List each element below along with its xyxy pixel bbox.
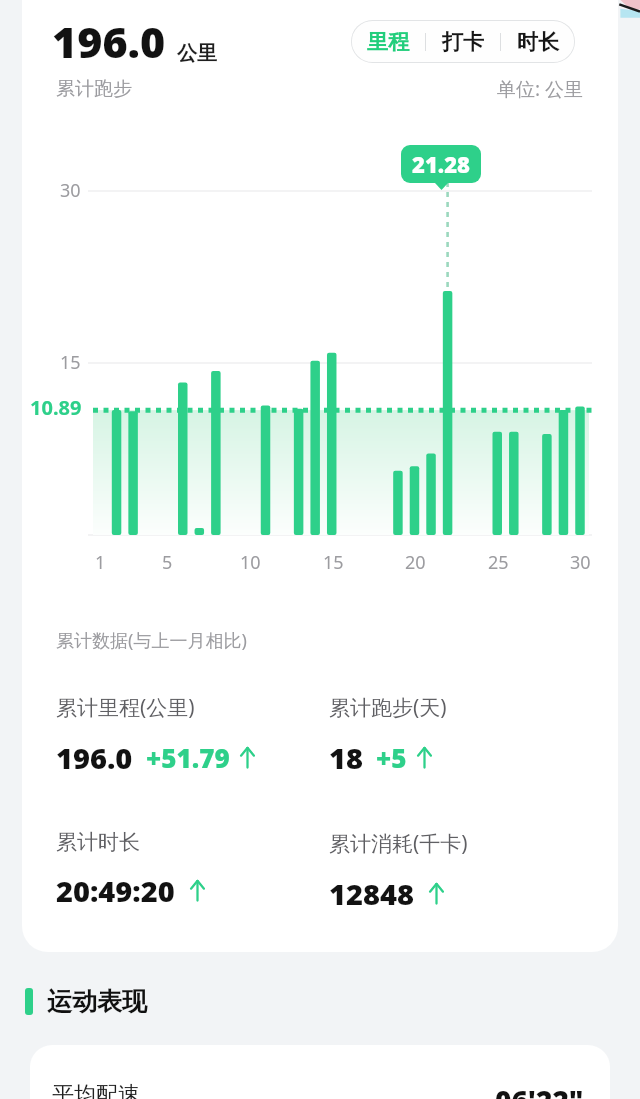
other: Increased — [238, 746, 257, 769]
staticText: 累计消耗(千卡) — [329, 829, 468, 858]
staticText: 单位: 公里 — [497, 76, 584, 102]
staticText: 平均配速 — [52, 1081, 140, 1099]
staticText: 196.0 — [52, 12, 166, 71]
staticText: 20:49:20 — [56, 871, 175, 910]
staticText: +51.79 — [146, 740, 230, 775]
staticText: 10 — [240, 550, 261, 575]
staticText: 12848 — [329, 874, 414, 913]
staticText: 21.28 — [412, 149, 470, 179]
other: Increased — [427, 882, 446, 905]
other: Increased — [415, 746, 434, 769]
staticText: 15 — [323, 550, 344, 575]
staticText: 里程 — [367, 29, 409, 55]
staticText: 公里 — [177, 41, 217, 66]
staticText: 1 — [95, 550, 106, 575]
staticText: 15 — [60, 350, 81, 375]
staticText: 时长 — [517, 29, 559, 55]
staticText: 30 — [570, 550, 591, 575]
staticText: 累计时长 — [56, 829, 140, 855]
button[interactable]: 里程 — [351, 22, 425, 62]
staticText: 20 — [405, 550, 426, 575]
staticText: 累计跑步 — [56, 77, 132, 101]
other: Increased — [188, 879, 207, 902]
staticText: 运动表现 — [47, 986, 147, 1017]
staticText: 5 — [162, 550, 173, 575]
button[interactable]: 累计跑步(天) — [329, 693, 602, 777]
staticText: +5 — [376, 740, 407, 775]
staticText: 30 — [60, 178, 81, 203]
button[interactable]: 累计消耗(千卡) — [329, 829, 602, 913]
staticText: 10.89 — [30, 394, 82, 421]
staticText: 196.0 — [56, 738, 133, 777]
staticText: 06'22" — [495, 1081, 584, 1099]
button[interactable]: 打卡 — [426, 22, 500, 62]
staticText: 累计里程(公里) — [56, 693, 195, 722]
staticText: 18 — [329, 738, 363, 777]
staticText: 打卡 — [442, 29, 484, 55]
staticText: 累计跑步(天) — [329, 693, 447, 722]
staticText: 25 — [488, 550, 509, 575]
button[interactable]: 时长 — [501, 22, 575, 62]
button[interactable]: 平均配速 — [30, 1045, 610, 1099]
button[interactable]: 累计时长 — [56, 829, 329, 910]
button[interactable]: 累计里程(公里) — [56, 693, 329, 777]
staticText: 累计数据(与上一月相比) — [56, 628, 247, 653]
